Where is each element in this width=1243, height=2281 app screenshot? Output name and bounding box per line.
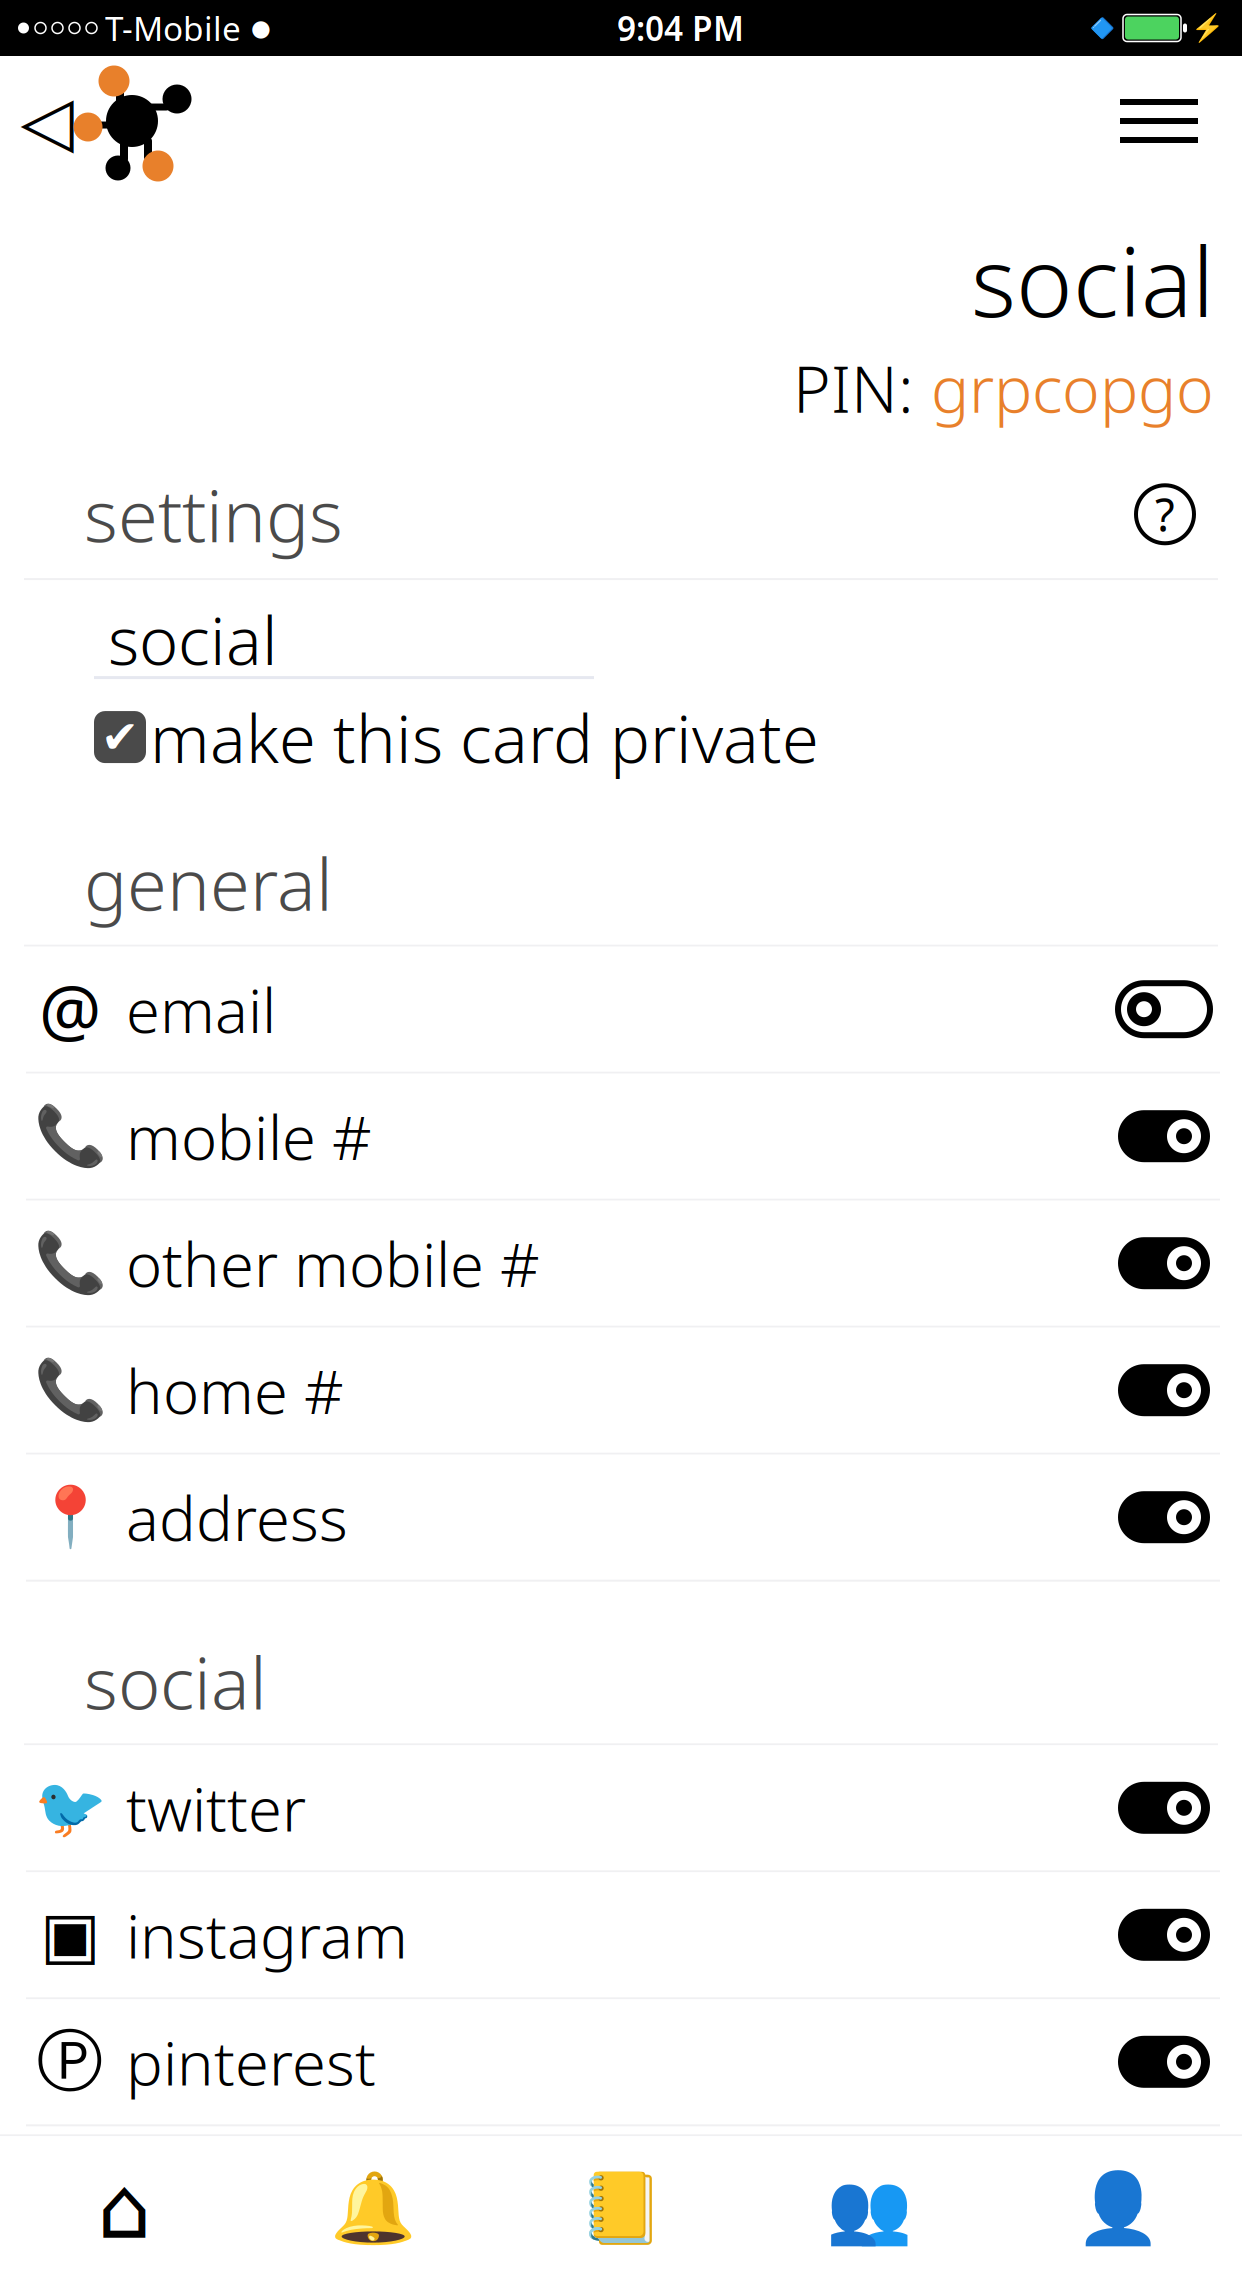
button[interactable]: ▣ [0,1872,1242,1999]
staticText: mobile # [126,1095,372,1177]
staticText: 🔷 [1090,17,1115,39]
staticText: ⌂ [97,2160,151,2257]
button[interactable]: Enabled [1116,1106,1212,1166]
button[interactable]: Enabled [1116,1778,1212,1838]
staticText: 9:04 PM [617,6,744,50]
button[interactable]: Groups [745,2136,994,2280]
staticText: 🐦 [33,1774,106,1841]
staticText: 📞 [33,1357,106,1424]
staticText: T-Mobile [105,6,241,50]
staticText: 📞 [33,1230,106,1297]
button[interactable]: Enabled [1116,1487,1212,1547]
button[interactable]: Help [1128,477,1202,551]
staticText: settings [84,466,343,562]
button[interactable]: Disabled [1116,979,1212,1039]
button[interactable]: Enabled [1116,1233,1212,1293]
button[interactable]: social [94,602,594,679]
staticText: pinterest [126,2021,376,2102]
staticText: 📞 [33,1103,106,1170]
staticText: ◁ [20,82,73,160]
staticText: ● [251,15,271,41]
staticText: ? [1155,484,1175,544]
staticText: make this card private [150,693,819,781]
staticText: address [126,1476,348,1558]
staticText: 📒 [578,2169,664,2248]
staticText: 📍 [33,1484,106,1551]
staticText: home # [126,1349,344,1431]
staticText: ▣ [40,1898,100,1971]
button[interactable]: Enabled [1116,2032,1212,2092]
staticText: @ [39,963,101,1055]
button[interactable]: ✔ [94,697,1212,777]
staticText: ⚡ [1191,13,1224,43]
button[interactable]: Add contact [994,2136,1242,2280]
staticText: email [126,968,276,1050]
staticText: 👥 [826,2169,912,2248]
button[interactable]: Notifications [248,2136,497,2280]
staticText: social [84,1634,267,1729]
staticText: ✔ [101,711,139,763]
staticText: social [108,595,278,683]
staticText: instagram [126,1894,408,1975]
staticText: grpcopgo [931,345,1214,430]
button[interactable]: Back [0,61,192,181]
button[interactable]: Ⓟ [0,1999,1242,2126]
staticText: twitter [126,1767,306,1848]
button[interactable]: 📞 [0,1074,1242,1201]
staticText: 🔔 [330,2169,416,2248]
staticText: Ⓟ [36,2021,103,2103]
button[interactable]: @ [0,947,1242,1074]
staticText: general [84,835,333,931]
staticText: social [971,216,1214,343]
staticText: 👤 [1075,2169,1161,2248]
button[interactable]: Enabled [1116,1905,1212,1965]
button[interactable]: Menu [1098,77,1220,165]
button[interactable]: 🐦 [0,1745,1242,1872]
button[interactable]: Enabled [1116,1360,1212,1420]
staticText: PIN: [793,345,931,430]
button[interactable]: 📞 [0,1328,1242,1455]
button[interactable]: 📞 [0,1201,1242,1328]
button[interactable]: Home [0,2136,248,2280]
button[interactable]: Contacts [497,2136,745,2280]
button[interactable]: 📍 [0,1455,1242,1582]
staticText: other mobile # [126,1222,540,1304]
